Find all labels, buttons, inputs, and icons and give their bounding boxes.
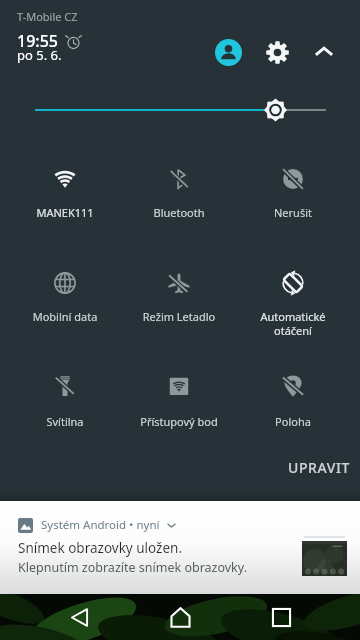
staticText: Svítilna	[10, 414, 120, 429]
button[interactable]	[238, 262, 348, 336]
staticText: 19:55	[17, 30, 58, 52]
button[interactable]	[10, 262, 120, 336]
button[interactable]	[238, 158, 348, 232]
staticText: MANEK111	[10, 205, 120, 220]
staticText: Přístupový bod	[124, 414, 234, 429]
button[interactable]	[10, 365, 120, 439]
staticText: Klepnutím zobrazíte snímek obrazovky.	[18, 559, 248, 576]
button[interactable]: Collapse panel	[309, 37, 338, 66]
button[interactable]: User	[215, 39, 242, 66]
button[interactable]: UPRAVIT	[280, 452, 358, 483]
button[interactable]: Systém Android • nyní	[0, 501, 360, 594]
button[interactable]	[10, 158, 120, 232]
staticText: T-Mobile CZ	[17, 9, 78, 24]
button[interactable]: Brightness	[0, 95, 360, 125]
button[interactable]: Home	[158, 595, 202, 639]
staticText: Režim Letadlo	[124, 309, 234, 324]
button[interactable]: Recent apps	[259, 595, 303, 639]
button[interactable]: Back	[57, 595, 101, 639]
staticText: UPRAVIT	[288, 458, 350, 477]
button[interactable]	[124, 262, 234, 336]
staticText: Snímek obrazovky uložen.	[18, 539, 183, 557]
button[interactable]	[124, 158, 234, 232]
button[interactable]: Settings	[263, 38, 292, 67]
staticText: Automatické otáčení	[238, 309, 348, 338]
button[interactable]	[124, 365, 234, 439]
staticText: po 5. 6.	[17, 46, 62, 64]
button[interactable]	[238, 365, 348, 439]
staticText: Systém Android • nyní	[41, 517, 160, 533]
staticText: Bluetooth	[124, 205, 234, 220]
staticText: Poloha	[238, 414, 348, 429]
staticText: Nerušit	[238, 205, 348, 220]
staticText: Mobilní data	[10, 309, 120, 324]
